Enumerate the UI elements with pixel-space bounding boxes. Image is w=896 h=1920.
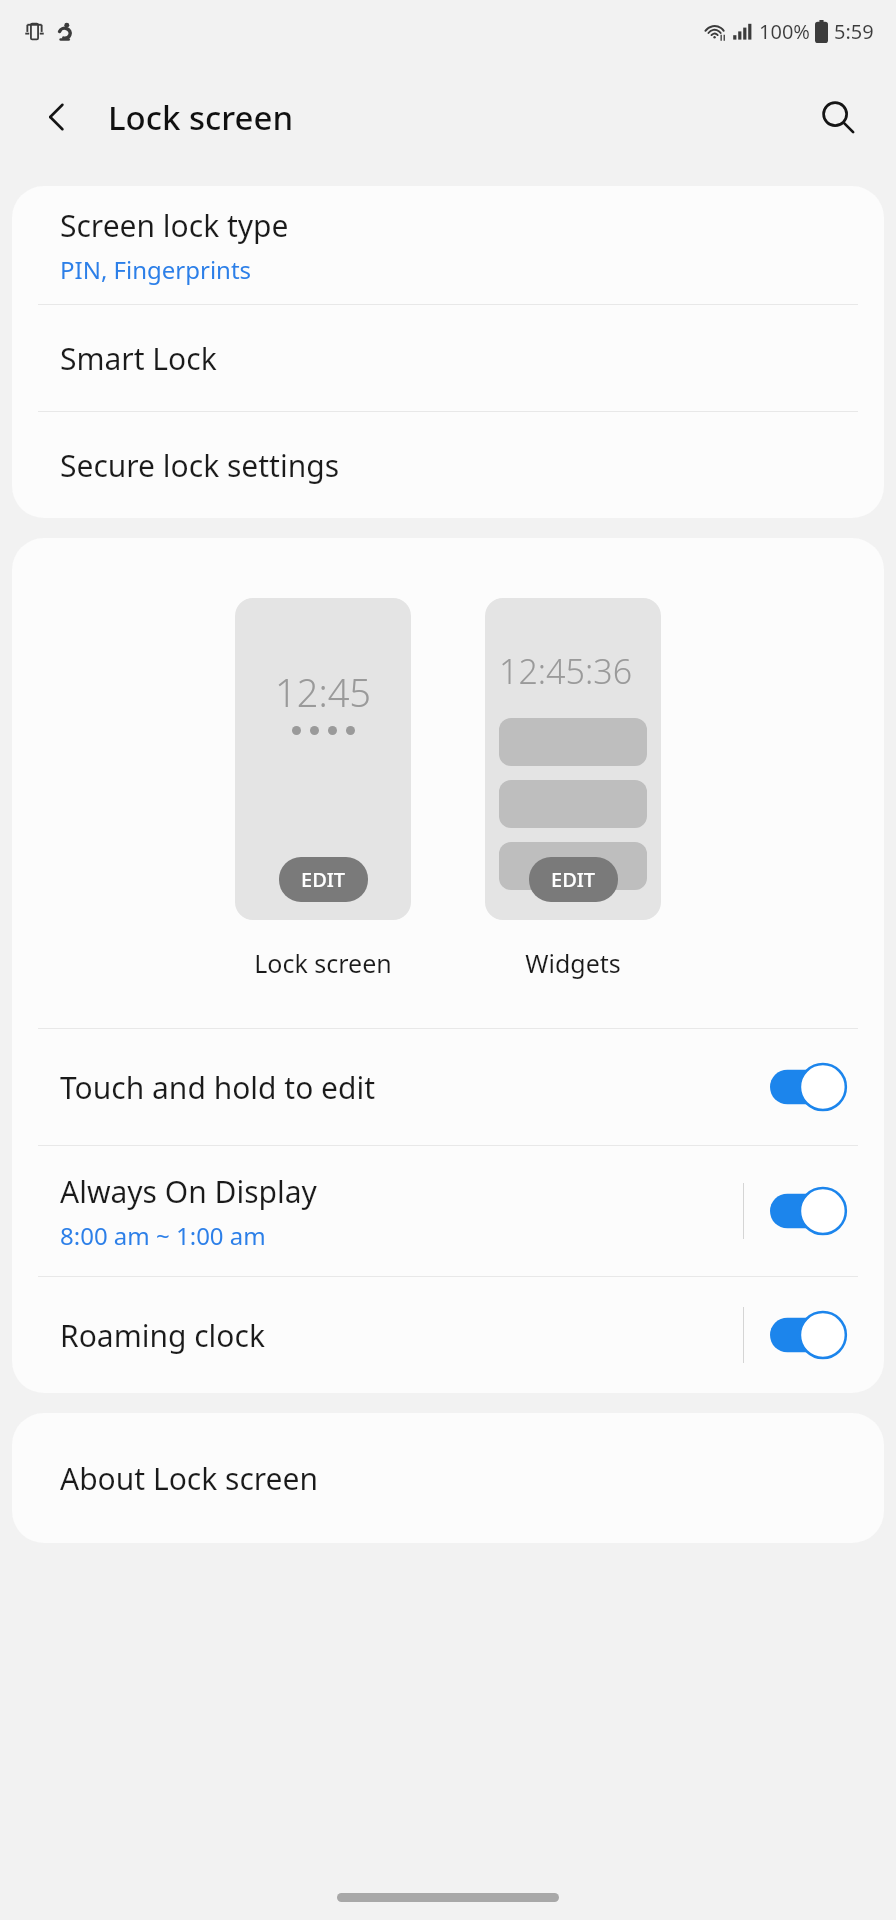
- staticText: EDIT: [301, 866, 346, 893]
- button[interactable]: EDIT: [279, 857, 368, 902]
- staticText: 12:45:36: [499, 648, 633, 694]
- staticText: 5:59: [834, 18, 874, 45]
- staticText: 100%: [759, 18, 810, 45]
- staticText: Secure lock settings: [60, 445, 339, 486]
- staticText: About Lock screen: [60, 1458, 318, 1499]
- button[interactable]: About Lock screen: [12, 1413, 884, 1543]
- staticText: 8:00 am ~ 1:00 am: [60, 1219, 266, 1252]
- staticText: Roaming clock: [60, 1315, 265, 1356]
- button[interactable]: 12:45: [235, 598, 411, 920]
- button[interactable]: Back: [28, 88, 86, 146]
- button[interactable]: 12:45:36: [485, 598, 661, 920]
- button[interactable]: Touch and hold to edit: [12, 1029, 884, 1145]
- staticText: 12:45: [275, 666, 372, 718]
- button[interactable]: Roaming clock: [12, 1277, 884, 1393]
- staticText: EDIT: [551, 866, 596, 893]
- staticText: Smart Lock: [60, 338, 217, 379]
- button[interactable]: Screen lock type: [12, 186, 884, 304]
- button[interactable]: Smart Lock: [12, 305, 884, 411]
- button[interactable]: EDIT: [529, 857, 618, 902]
- button[interactable]: Always On Display: [12, 1146, 884, 1276]
- staticText: Lock screen: [254, 946, 392, 980]
- button[interactable]: [770, 1059, 854, 1115]
- staticText: Screen lock type: [60, 205, 289, 246]
- button[interactable]: Search: [808, 87, 868, 147]
- staticText: Lock screen: [108, 95, 294, 140]
- button[interactable]: [770, 1307, 854, 1363]
- staticText: PIN, Fingerprints: [60, 253, 252, 286]
- button[interactable]: [770, 1183, 854, 1239]
- button[interactable]: Secure lock settings: [12, 412, 884, 518]
- staticText: Widgets: [525, 946, 621, 980]
- staticText: Touch and hold to edit: [60, 1067, 376, 1108]
- staticText: Always On Display: [60, 1171, 317, 1212]
